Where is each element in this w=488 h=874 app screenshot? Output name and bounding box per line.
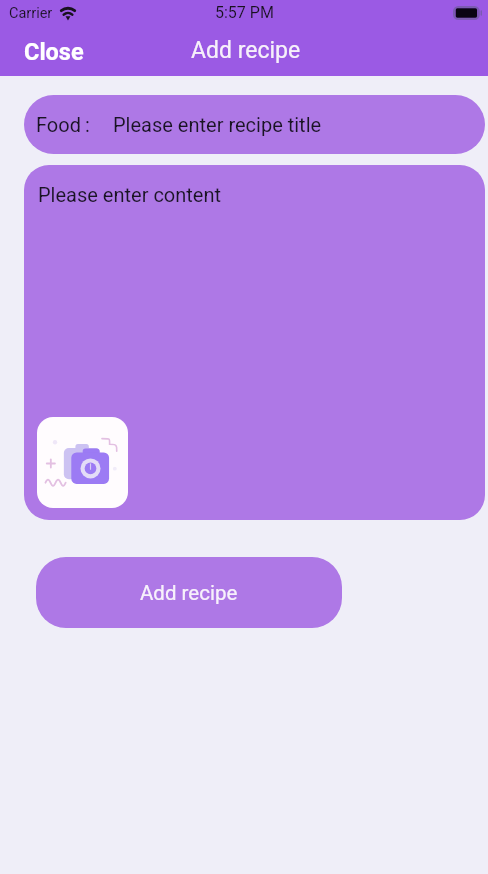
staticText: Add recipe [191,37,301,64]
staticText: Carrier [9,5,53,22]
button[interactable]: Add photo [37,417,128,508]
staticText: Please enter recipe title [113,113,322,136]
staticText: : [85,113,90,136]
staticText: 5:57 PM [215,3,274,22]
button[interactable]: Please enter content [24,165,485,520]
button[interactable]: Food [24,95,485,154]
staticText: Please enter content [38,183,222,206]
button[interactable]: Add recipe [36,557,342,628]
staticText: Add recipe [140,581,238,605]
staticText: Close [24,38,84,66]
staticText: Food [36,113,81,136]
button[interactable]: Close [24,38,84,66]
